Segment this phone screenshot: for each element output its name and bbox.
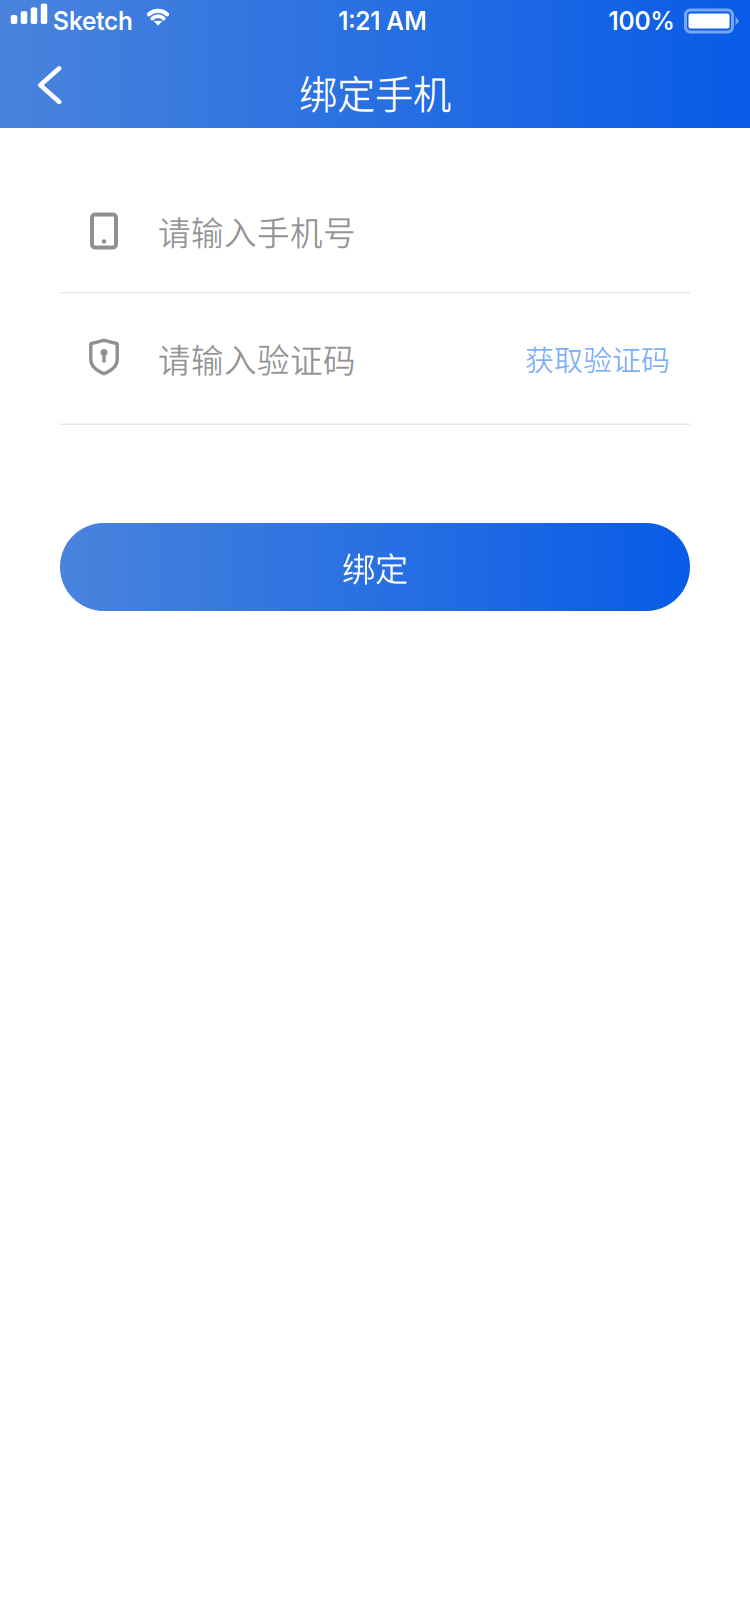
staticText: 绑定手机 bbox=[299, 64, 451, 120]
staticText: 请输入手机号 bbox=[158, 207, 356, 254]
staticText: 1:21 AM bbox=[338, 6, 426, 36]
button[interactable]: 获取验证码 bbox=[525, 316, 750, 401]
button[interactable]: Back bbox=[0, 60, 91, 124]
staticText: 获取验证码 bbox=[525, 338, 670, 379]
staticText: 请输入验证码 bbox=[158, 335, 356, 382]
staticText: 100% bbox=[608, 6, 674, 36]
button[interactable]: 绑定 bbox=[60, 523, 690, 611]
staticText: 绑定 bbox=[342, 543, 408, 591]
staticText: Sketch bbox=[53, 6, 133, 36]
